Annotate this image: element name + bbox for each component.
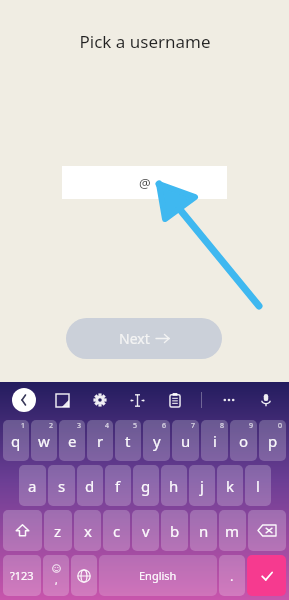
staticText: l [256,476,260,496]
button[interactable]: r [87,420,113,461]
staticText: v [142,521,150,541]
button[interactable]: c [103,510,130,551]
staticText: 4 [105,421,110,431]
button[interactable]: ?123 [3,555,41,596]
staticText: e [68,431,77,451]
staticText: 5 [133,421,138,431]
staticText: . [230,567,234,585]
button[interactable]: Cursor control [126,389,148,411]
staticText: i [213,431,217,451]
button[interactable]: u [172,420,199,461]
button[interactable]: l [245,465,271,506]
staticText: 6 [162,421,167,431]
staticText: w [38,431,50,451]
button[interactable]: . [219,555,245,596]
button[interactable]: v [132,510,159,551]
button[interactable]: i [201,420,228,461]
staticText: a [28,476,37,496]
button[interactable]: a [19,465,46,506]
staticText: Pick a username [79,30,211,53]
staticText: g [141,476,151,496]
staticText: z [54,521,62,541]
button[interactable]: e [59,420,85,461]
button[interactable]: English [99,555,217,596]
button[interactable]: h [161,465,187,506]
button[interactable]: Settings [89,389,111,411]
staticText: ?123 [10,568,34,583]
staticText: 0 [278,421,283,431]
other: Emoji and comma [43,555,69,596]
button[interactable]: Emoji and comma [43,555,69,596]
button[interactable]: n [190,510,217,551]
button[interactable]: More [218,389,240,411]
staticText: r [97,431,104,451]
button[interactable]: Back [12,388,36,412]
button[interactable]: Theme [51,389,73,411]
button[interactable]: m [219,510,246,551]
staticText: 2 [49,421,54,431]
staticText: Next [119,329,150,348]
button[interactable]: g [133,465,159,506]
button[interactable]: w [31,420,57,461]
staticText: t [125,431,131,451]
staticText: 7 [191,421,196,431]
button[interactable]: Change language [71,555,97,596]
button[interactable]: o [230,420,257,461]
staticText: y [153,431,161,451]
staticText: j [200,476,204,496]
button[interactable]: x [74,510,101,551]
button[interactable]: Voice input [255,389,277,411]
button[interactable]: p [259,420,286,461]
staticText: 8 [220,421,225,431]
staticText: b [170,521,180,541]
button[interactable]: Next [66,318,222,359]
staticText: , [55,573,58,587]
button[interactable]: f [105,465,131,506]
staticText: u [181,431,191,451]
staticText: 9 [249,421,254,431]
button[interactable]: s [48,465,75,506]
staticText: p [268,431,278,451]
staticText: c [113,521,121,541]
button[interactable]: j [189,465,215,506]
button[interactable]: b [161,510,188,551]
button[interactable]: t [115,420,141,461]
button[interactable]: Enter [247,555,286,596]
button[interactable]: z [44,510,72,551]
staticText: @ [139,174,151,192]
button[interactable]: @ [62,166,227,199]
button[interactable]: Clipboard [164,389,186,411]
staticText: 3 [77,421,82,431]
other: Backspace [248,510,286,551]
button[interactable]: q [3,420,29,461]
staticText: f [115,476,121,496]
button[interactable]: d [77,465,103,506]
other: Change language [71,555,97,596]
button[interactable]: y [143,420,170,461]
staticText: d [85,476,95,496]
staticText: q [11,431,21,451]
button[interactable] [3,510,42,551]
staticText: k [226,476,235,496]
staticText: s [58,476,66,496]
staticText: x [84,521,92,541]
staticText: 1 [21,421,26,431]
staticText: h [169,476,179,496]
staticText: English [139,568,177,583]
staticText: m [225,521,240,541]
staticText: n [199,521,209,541]
button[interactable]: Backspace [248,510,286,551]
button[interactable]: k [217,465,243,506]
staticText: o [239,431,249,451]
